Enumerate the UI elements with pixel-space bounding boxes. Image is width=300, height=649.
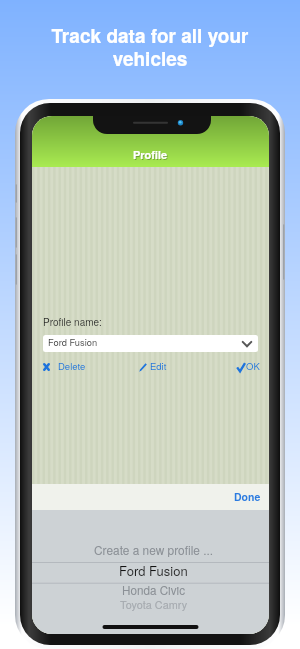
other: Edit — [139, 363, 147, 372]
button[interactable]: Ford Fusion — [43, 335, 258, 352]
staticText: Create a new profile ... — [94, 541, 214, 558]
other: Delete — [43, 363, 50, 371]
button[interactable]: Ford Fusion — [35, 561, 269, 579]
button[interactable]: Done — [226, 486, 269, 509]
staticText: Ford Fusion — [119, 561, 188, 579]
button[interactable]: Edit — [139, 362, 180, 373]
staticText: Toyota Camry — [120, 596, 188, 612]
staticText: Track data for all your vehicles — [20, 22, 280, 72]
other: OK — [237, 363, 245, 372]
staticText: Profile name: — [43, 315, 102, 329]
staticText: Done — [234, 489, 261, 504]
staticText: Edit — [150, 359, 167, 370]
button[interactable]: Delete — [43, 362, 88, 373]
button[interactable]: Create a new profile ... — [35, 540, 269, 558]
staticText: OK — [246, 359, 260, 370]
button[interactable]: Toyota Camry — [35, 595, 269, 613]
staticText: Delete — [58, 359, 86, 370]
other: Open profile list — [242, 339, 252, 349]
staticText: Honda Civic — [122, 582, 185, 599]
staticText: Profile — [133, 147, 168, 163]
button[interactable]: Honda Civic — [35, 581, 269, 599]
button[interactable]: OK — [237, 362, 269, 373]
staticText: Profile — [134, 148, 169, 164]
staticText: Ford Fusion — [48, 335, 98, 348]
